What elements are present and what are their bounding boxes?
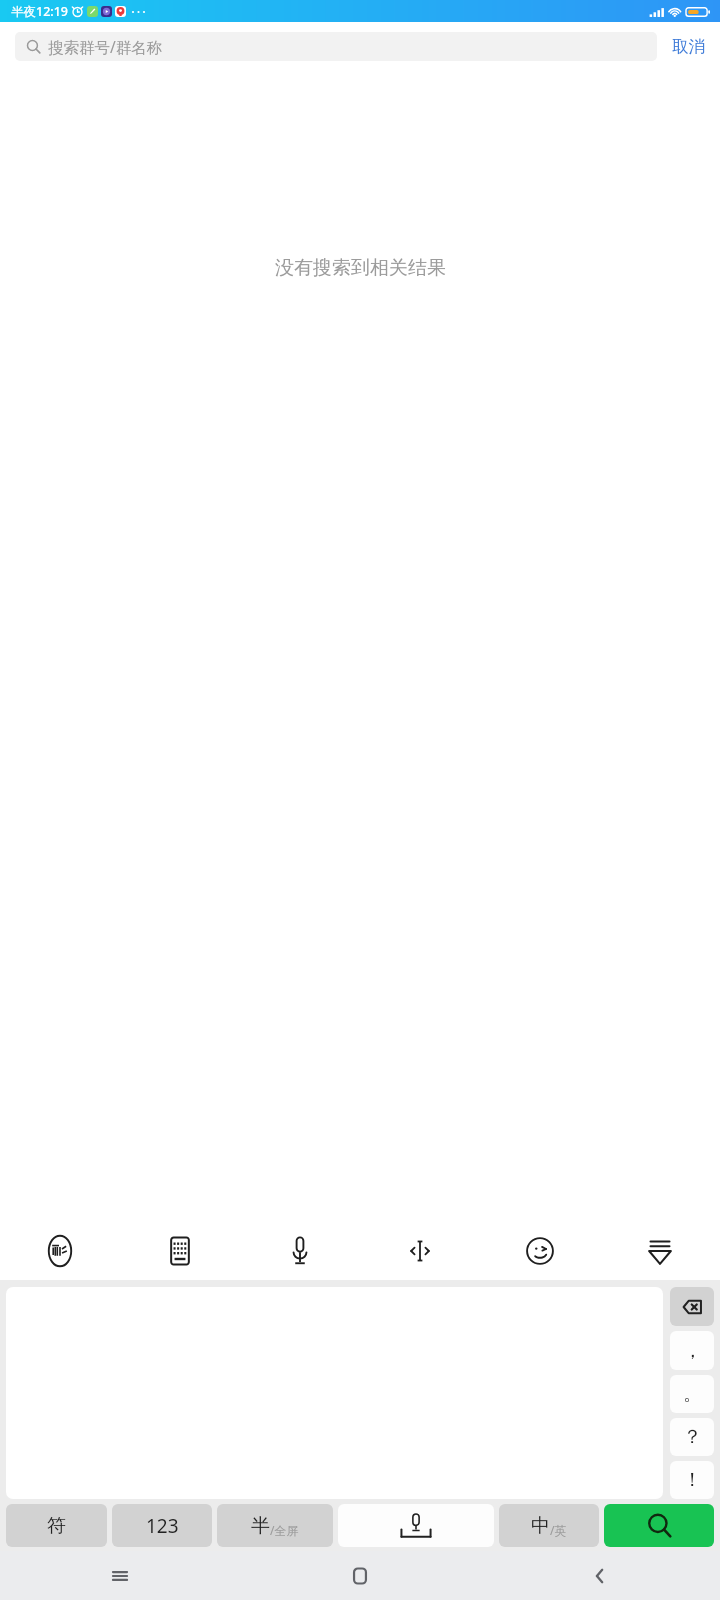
staticText: 半 bbox=[251, 1514, 270, 1538]
staticText: ！ bbox=[683, 1468, 702, 1492]
button[interactable]: ， bbox=[670, 1331, 714, 1370]
button[interactable]: Voice input bbox=[240, 1222, 360, 1280]
staticText: /英 bbox=[550, 1522, 567, 1538]
staticText: 取消 bbox=[672, 36, 705, 57]
button[interactable]: 123 bbox=[112, 1504, 212, 1547]
button[interactable]: ？ bbox=[670, 1418, 714, 1456]
staticText: /全屏 bbox=[270, 1522, 299, 1538]
staticText: ？ bbox=[683, 1425, 702, 1449]
button[interactable]: 中 bbox=[499, 1504, 599, 1547]
staticText: 。 bbox=[683, 1382, 702, 1406]
staticText: 符 bbox=[47, 1514, 66, 1538]
button[interactable]: Recent apps bbox=[0, 1551, 240, 1600]
button[interactable]: 。 bbox=[670, 1375, 714, 1413]
button[interactable]: Emoji bbox=[480, 1222, 600, 1280]
staticText: 123 bbox=[146, 1513, 179, 1539]
staticText: 中 bbox=[531, 1514, 550, 1538]
button[interactable]: Backspace bbox=[670, 1287, 714, 1326]
button[interactable]: Back bbox=[480, 1551, 720, 1600]
button[interactable]: Home bbox=[240, 1551, 480, 1600]
button[interactable]: 半 bbox=[217, 1504, 333, 1547]
button[interactable]: ！ bbox=[670, 1461, 714, 1499]
button[interactable]: Space bbox=[338, 1504, 494, 1547]
staticText: 没有搜索到相关结果 bbox=[275, 256, 446, 280]
button[interactable]: Input method bbox=[0, 1222, 120, 1280]
button[interactable]: Move cursor bbox=[360, 1222, 480, 1280]
button[interactable]: Keyboard bbox=[120, 1222, 240, 1280]
button[interactable]: Search bbox=[604, 1504, 714, 1547]
button[interactable]: Hide keyboard bbox=[600, 1222, 720, 1280]
button[interactable]: 符 bbox=[6, 1504, 107, 1547]
button[interactable]: 搜索群号/群名称 bbox=[15, 32, 657, 61]
staticText: ， bbox=[683, 1339, 702, 1363]
staticText: 搜索群号/群名称 bbox=[48, 36, 163, 57]
button[interactable]: 取消 bbox=[657, 22, 720, 70]
staticText: 半夜12:19 bbox=[11, 3, 69, 20]
